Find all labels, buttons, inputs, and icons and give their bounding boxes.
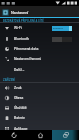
staticText: Bluetooth (14, 37, 29, 41)
button[interactable]: Recent apps (53, 130, 79, 140)
staticText: Baterie (14, 116, 25, 120)
button[interactable]: Baterie (0, 113, 79, 123)
staticText: Nastavení (11, 10, 29, 15)
button[interactable]: Přenesená data (0, 44, 79, 54)
staticText: BEZDRÁTOVÁ PŘIPOJENÍ A SÍTĚ (3, 19, 44, 22)
staticText: Wi-Fi (14, 26, 22, 30)
staticText: Aplikace (14, 127, 28, 131)
staticText: Úložiště (14, 106, 27, 110)
button[interactable]: Home (27, 130, 53, 140)
button[interactable]: Aplikace (0, 124, 79, 131)
staticText: Zvuk (14, 86, 22, 90)
staticText: ZAŘÍZENÍ (3, 78, 16, 81)
button[interactable]: Wi-Fi (0, 23, 79, 33)
button[interactable]: Back (0, 130, 27, 140)
button[interactable]: Úložiště (0, 103, 79, 113)
button[interactable]: Další... (0, 65, 79, 75)
staticText: Obraz (14, 96, 24, 100)
button[interactable]: Obraz (0, 93, 79, 103)
button[interactable]: Nastavení hovorů (0, 54, 79, 64)
button[interactable]: Zvuk (0, 83, 79, 93)
staticText: Další... (14, 68, 25, 72)
staticText: ZAPNUTO (53, 27, 64, 30)
staticText: Nastavení hovorů (14, 57, 42, 61)
staticText: Přenesená data (14, 47, 39, 51)
button[interactable]: Bluetooth (0, 34, 79, 44)
